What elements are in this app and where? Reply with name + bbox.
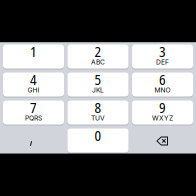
button[interactable]: 9	[132, 100, 193, 125]
staticText: TUV	[91, 114, 105, 122]
button[interactable]: 5	[67, 72, 128, 97]
staticText: 0	[94, 126, 101, 145]
staticText: ABC	[91, 58, 105, 66]
button[interactable]: 2	[67, 44, 128, 69]
button[interactable]: Delete	[132, 128, 193, 153]
staticText: 7	[30, 98, 37, 117]
button[interactable]: Comma	[3, 128, 64, 153]
button[interactable]: 6	[132, 72, 193, 97]
staticText: WXYZ	[152, 114, 173, 122]
button[interactable]: 1	[3, 44, 64, 69]
staticText: 9	[159, 98, 166, 117]
button[interactable]: 7	[3, 100, 64, 125]
staticText: DEF	[156, 58, 169, 66]
staticText: 4	[30, 70, 37, 89]
button[interactable]: 3	[132, 44, 193, 69]
staticText: 8	[94, 98, 101, 117]
button[interactable]: 8	[67, 100, 128, 125]
staticText: MNO	[154, 86, 170, 94]
staticText: JKL	[92, 86, 104, 94]
staticText: 3	[159, 42, 166, 61]
staticText: 2	[94, 42, 101, 61]
staticText: PQRS	[25, 114, 42, 122]
staticText: 1	[30, 42, 37, 61]
button[interactable]: 4	[3, 72, 64, 97]
staticText: GHI	[27, 86, 39, 94]
button[interactable]: 0	[67, 128, 128, 153]
staticText: 6	[159, 70, 166, 89]
staticText: 5	[94, 70, 101, 89]
